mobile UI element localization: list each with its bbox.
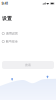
- staticText: 通用设置: [6, 31, 18, 35]
- staticText: 账号安全: [6, 39, 18, 43]
- button[interactable]: 通用设置: [0, 29, 56, 37]
- button[interactable]: 搜索: [2, 61, 54, 69]
- button[interactable]: 账号安全: [0, 37, 56, 45]
- staticText: 设置: [2, 15, 12, 21]
- staticText: 搜索: [25, 63, 31, 67]
- staticText: 9:41: [1, 1, 7, 6]
